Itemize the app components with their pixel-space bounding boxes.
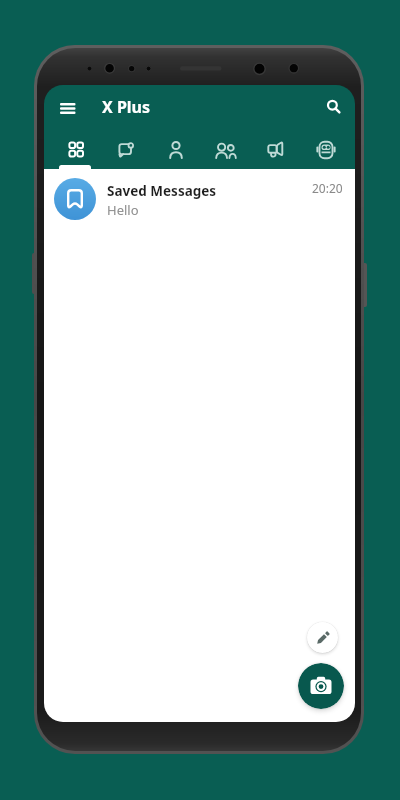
button[interactable]: [251, 131, 301, 169]
button[interactable]: [51, 92, 84, 124]
button[interactable]: [151, 131, 201, 169]
button[interactable]: [319, 93, 348, 121]
button[interactable]: [201, 131, 251, 169]
button[interactable]: [307, 622, 338, 653]
button[interactable]: [101, 131, 151, 169]
button[interactable]: Saved Messages: [44, 172, 355, 228]
button[interactable]: [51, 131, 101, 169]
staticText: 20:20: [312, 180, 343, 196]
staticText: Hello: [107, 201, 139, 219]
staticText: Saved Messages: [107, 182, 217, 200]
button[interactable]: [301, 131, 351, 169]
staticText: X Plus: [102, 96, 151, 118]
button[interactable]: [298, 663, 344, 709]
